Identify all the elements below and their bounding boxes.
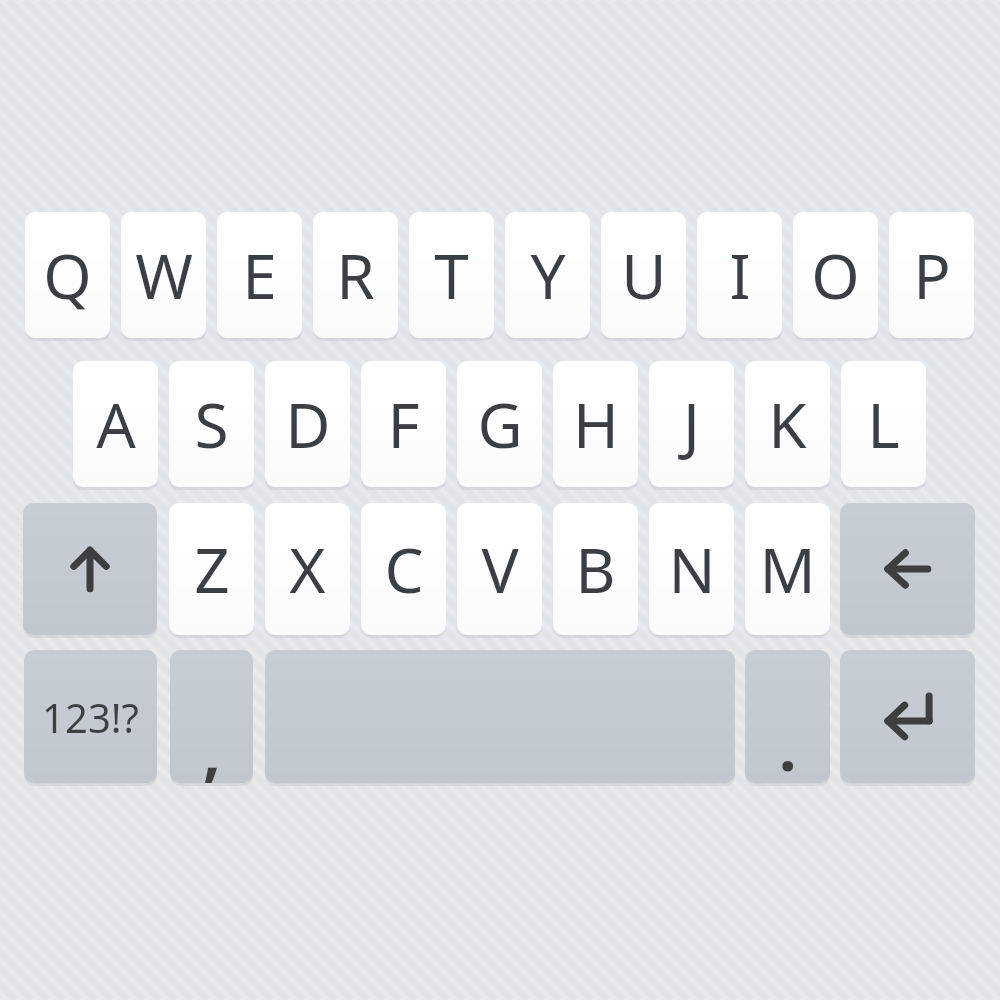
staticText: F: [387, 382, 420, 466]
staticText: L: [867, 382, 900, 466]
button[interactable]: 123!?: [24, 650, 157, 783]
button[interactable]: X: [265, 503, 350, 635]
staticText: 123!?: [42, 690, 139, 744]
button[interactable]: D: [265, 361, 350, 487]
staticText: D: [285, 382, 331, 466]
button[interactable]: K: [745, 361, 830, 487]
staticText: M: [759, 527, 816, 611]
button[interactable]: Z: [169, 503, 254, 635]
button[interactable]: A: [73, 361, 158, 487]
staticText: V: [481, 527, 519, 611]
staticText: R: [336, 233, 375, 317]
button[interactable]: E: [217, 212, 302, 338]
staticText: C: [384, 527, 424, 611]
button[interactable]: ,: [170, 650, 253, 783]
staticText: O: [811, 233, 860, 317]
button[interactable]: N: [649, 503, 734, 635]
button[interactable]: I: [697, 212, 782, 338]
staticText: B: [575, 527, 616, 611]
button[interactable]: P: [889, 212, 974, 338]
staticText: .: [779, 705, 797, 783]
staticText: S: [194, 382, 229, 466]
button[interactable]: S: [169, 361, 254, 487]
staticText: Q: [43, 233, 92, 317]
button[interactable]: .: [745, 650, 830, 783]
button[interactable]: J: [649, 361, 734, 487]
button[interactable]: V: [457, 503, 542, 635]
button[interactable]: G: [457, 361, 542, 487]
button[interactable]: L: [841, 361, 926, 487]
staticText: E: [242, 233, 277, 317]
staticText: J: [683, 382, 700, 466]
staticText: H: [573, 382, 619, 466]
button[interactable]: Shift: [23, 503, 157, 635]
button[interactable]: B: [553, 503, 638, 635]
staticText: T: [434, 233, 469, 317]
staticText: P: [913, 233, 951, 317]
staticText: W: [135, 233, 193, 317]
staticText: U: [621, 233, 667, 317]
button[interactable]: F: [361, 361, 446, 487]
button[interactable]: C: [361, 503, 446, 635]
button[interactable]: Backspace: [840, 503, 975, 635]
staticText: A: [96, 382, 136, 466]
button[interactable]: Enter: [840, 650, 975, 783]
staticText: G: [477, 382, 523, 466]
staticText: Y: [530, 233, 566, 317]
button[interactable]: T: [409, 212, 494, 338]
button[interactable]: Y: [505, 212, 590, 338]
button[interactable]: M: [745, 503, 830, 635]
button[interactable]: R: [313, 212, 398, 338]
staticText: N: [668, 527, 716, 611]
button[interactable]: U: [601, 212, 686, 338]
staticText: ,: [203, 709, 221, 783]
staticText: Z: [194, 527, 230, 611]
button[interactable]: W: [121, 212, 206, 338]
button[interactable]: Q: [25, 212, 110, 338]
button[interactable]: O: [793, 212, 878, 338]
staticText: K: [768, 382, 807, 466]
staticText: I: [729, 233, 751, 317]
staticText: X: [289, 527, 326, 611]
button[interactable]: H: [553, 361, 638, 487]
